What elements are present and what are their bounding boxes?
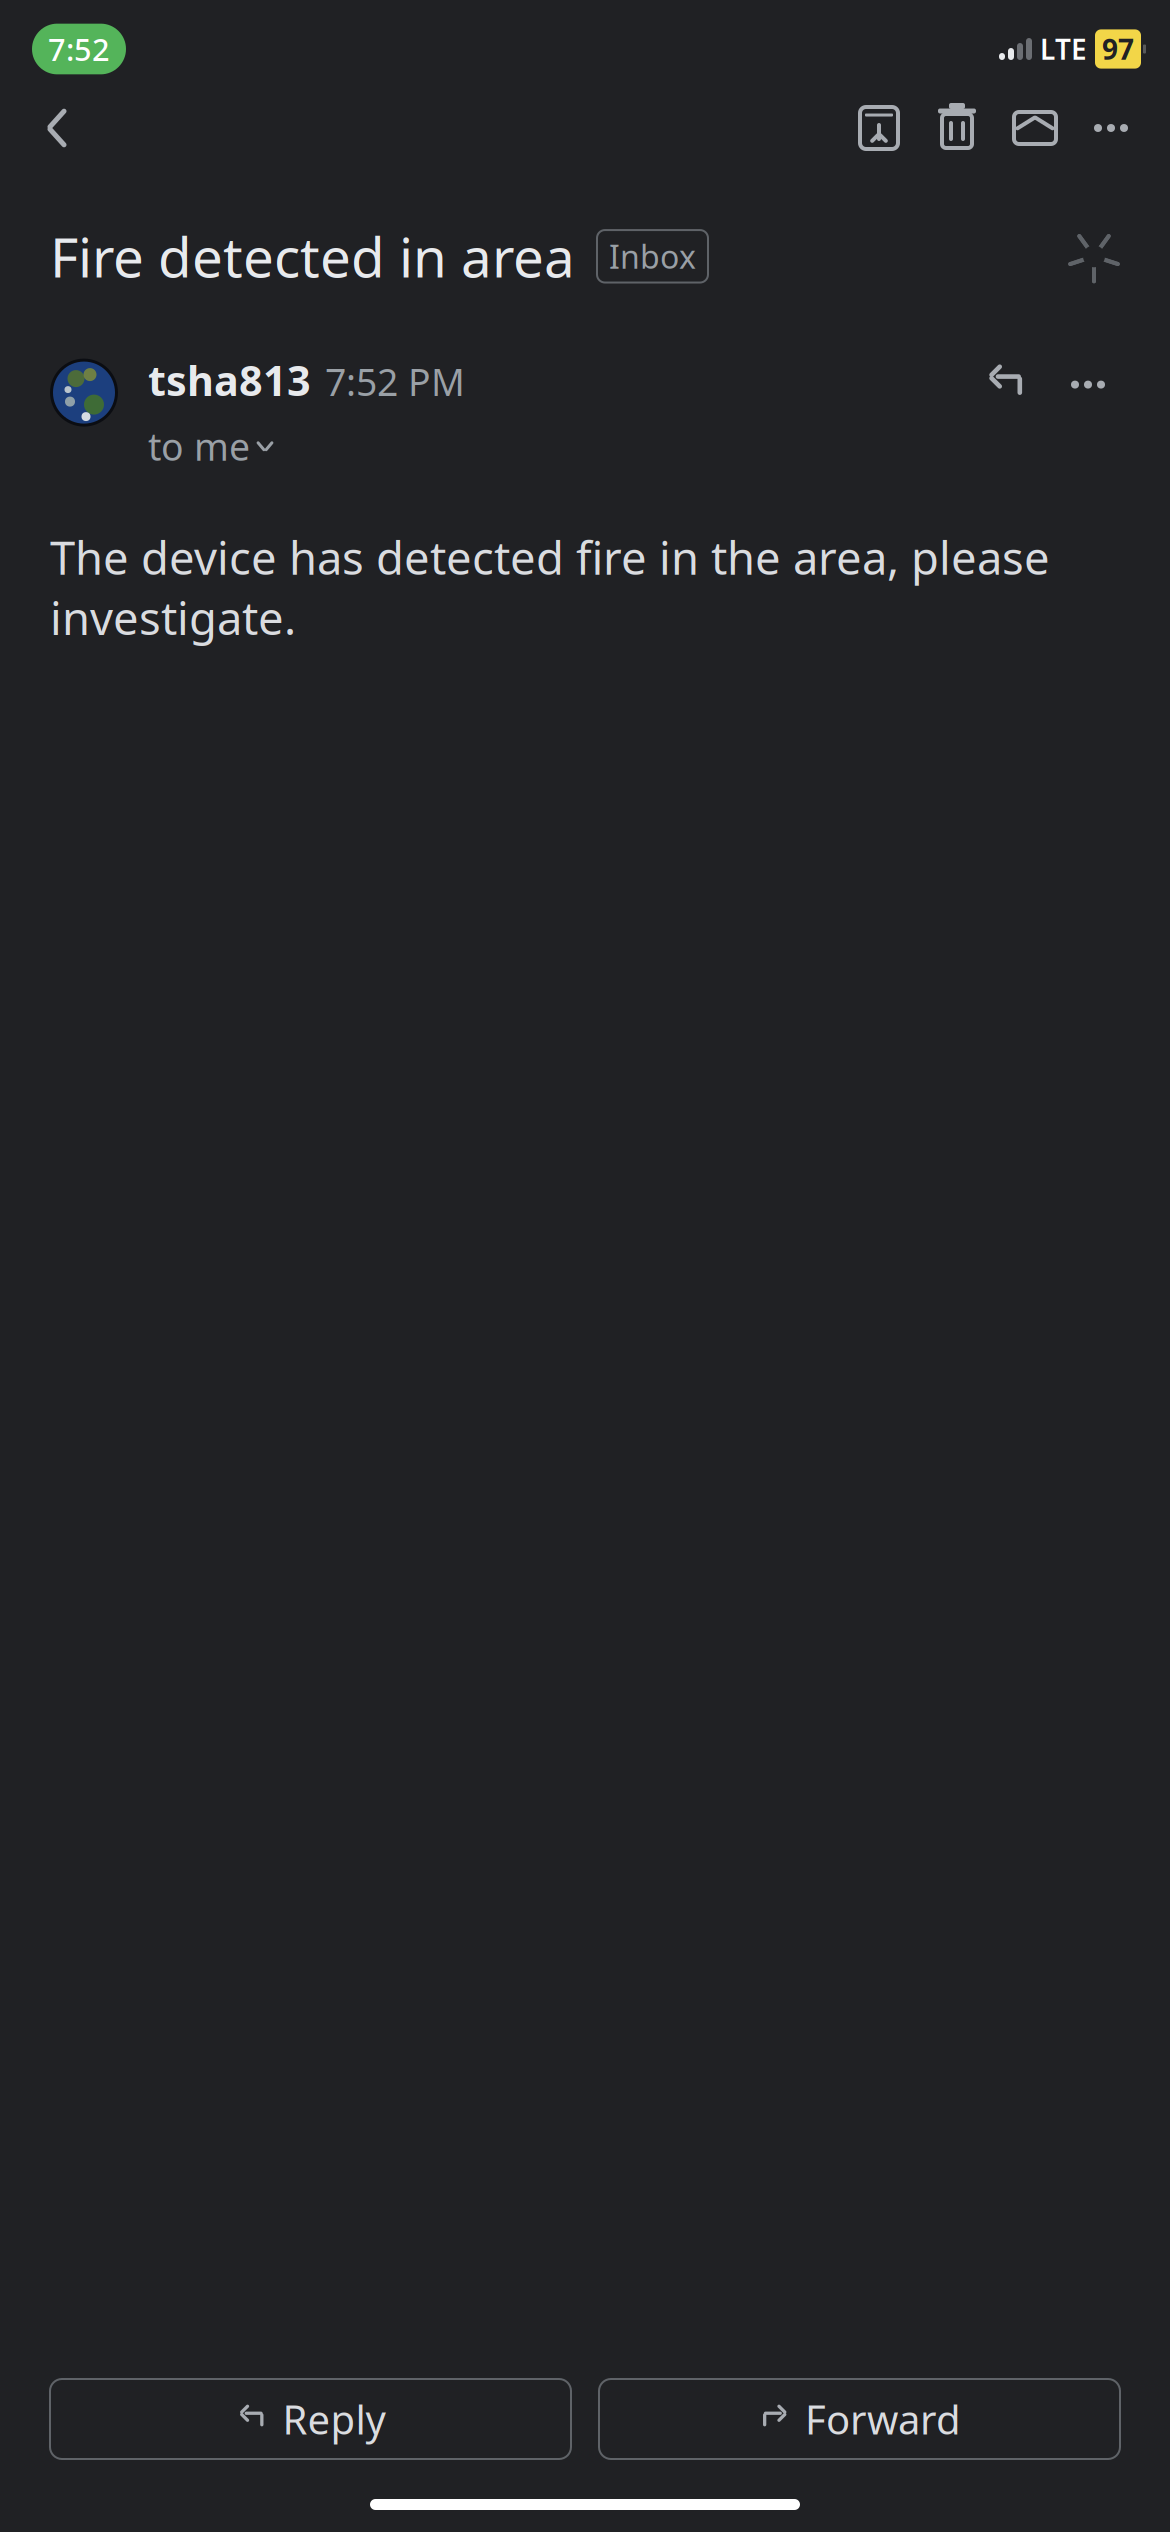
staticText: The device has detected fire in the area… bbox=[50, 527, 1050, 647]
staticText: tsha813 bbox=[148, 353, 311, 407]
button[interactable]: to me bbox=[148, 407, 276, 471]
button[interactable]: Forward bbox=[599, 2379, 1120, 2459]
staticText: Forward bbox=[805, 2392, 961, 2445]
button[interactable]: Back bbox=[22, 93, 92, 163]
staticText: 7:52 bbox=[48, 29, 110, 69]
staticText: Inbox bbox=[609, 235, 696, 278]
button[interactable]: Reply bbox=[974, 353, 1038, 417]
staticText: Fire detected in area bbox=[50, 220, 575, 293]
button[interactable]: More options bbox=[1074, 93, 1148, 163]
button[interactable]: Mark as unread bbox=[996, 93, 1074, 163]
button[interactable]: Archive bbox=[840, 93, 918, 163]
staticText: LTE bbox=[1040, 30, 1087, 68]
staticText: Reply bbox=[282, 2392, 385, 2445]
staticText: 97 bbox=[1102, 30, 1134, 68]
button[interactable]: More options bbox=[1056, 353, 1120, 417]
staticText: 7:52 PM bbox=[325, 357, 465, 406]
button[interactable]: Reply bbox=[50, 2379, 571, 2459]
staticText: to me bbox=[148, 421, 250, 471]
button[interactable]: Delete bbox=[918, 93, 996, 163]
button[interactable]: Star bbox=[1068, 230, 1120, 282]
